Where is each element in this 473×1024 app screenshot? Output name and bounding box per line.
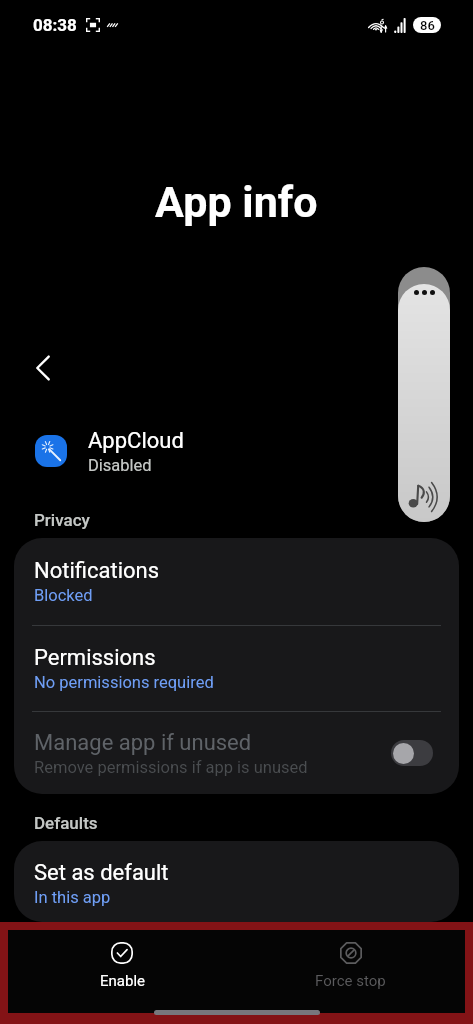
staticText: Blocked bbox=[34, 586, 93, 605]
button[interactable]: Force stop bbox=[236, 936, 465, 996]
staticText: In this app bbox=[34, 888, 111, 907]
staticText: AppCloud bbox=[88, 428, 184, 454]
staticText: No permissions required bbox=[34, 673, 214, 692]
staticText: Disabled bbox=[88, 456, 152, 475]
button[interactable]: Set as default bbox=[14, 844, 459, 922]
button[interactable]: Manage app if unused bbox=[14, 712, 459, 794]
staticText: Privacy bbox=[34, 510, 90, 530]
staticText: Defaults bbox=[34, 813, 98, 833]
staticText: Force stop bbox=[315, 972, 386, 990]
button[interactable]: Enable bbox=[8, 936, 236, 996]
staticText: App info bbox=[155, 177, 318, 227]
staticText: Permissions bbox=[34, 645, 156, 671]
button[interactable]: Back bbox=[20, 345, 66, 391]
button[interactable]: AppCloud bbox=[0, 421, 473, 481]
button[interactable]: Permissions bbox=[14, 626, 459, 711]
button[interactable]: Volume bbox=[398, 267, 450, 522]
staticText: Enable bbox=[100, 972, 145, 990]
staticText: Set as default bbox=[34, 860, 169, 886]
staticText: 86 bbox=[420, 18, 435, 33]
button[interactable]: Notifications bbox=[14, 538, 459, 625]
staticText: Remove permissions if app is unused bbox=[34, 758, 308, 777]
staticText: Notifications bbox=[34, 558, 160, 584]
staticText: Manage app if unused bbox=[34, 730, 252, 756]
staticText: 08:38 bbox=[33, 15, 77, 35]
